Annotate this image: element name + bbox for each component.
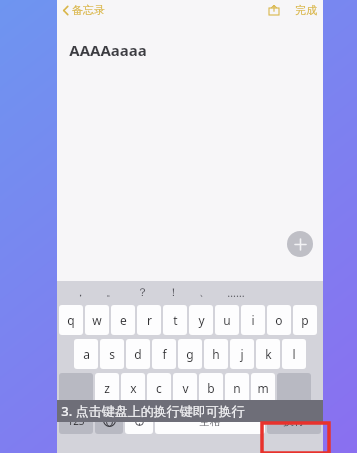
button[interactable]: d bbox=[126, 339, 150, 369]
staticText: ， bbox=[75, 285, 86, 299]
button[interactable]: r bbox=[137, 305, 161, 335]
button[interactable]: 语音输入 bbox=[125, 407, 153, 434]
staticText: 。 bbox=[106, 285, 117, 299]
button[interactable]: w bbox=[85, 305, 109, 335]
staticText: 、 bbox=[199, 285, 210, 299]
button[interactable]: f bbox=[152, 339, 176, 369]
staticText: y bbox=[198, 312, 205, 328]
staticText: a bbox=[83, 346, 90, 362]
button[interactable]: ， bbox=[65, 281, 96, 303]
staticText: ！ bbox=[168, 285, 179, 299]
staticText: x bbox=[130, 380, 137, 396]
staticText: d bbox=[134, 346, 142, 362]
staticText: q bbox=[67, 312, 75, 328]
staticText: s bbox=[109, 346, 115, 362]
button[interactable]: x bbox=[121, 373, 145, 403]
staticText: i bbox=[251, 312, 255, 328]
button[interactable] bbox=[277, 373, 311, 403]
staticText: r bbox=[147, 312, 152, 328]
staticText: z bbox=[104, 380, 110, 396]
staticText: b bbox=[207, 380, 215, 396]
staticText: t bbox=[173, 312, 178, 328]
staticText: k bbox=[265, 346, 272, 362]
button[interactable]: k bbox=[256, 339, 280, 369]
button[interactable]: c bbox=[147, 373, 171, 403]
button[interactable]: n bbox=[225, 373, 249, 403]
staticText: h bbox=[212, 346, 220, 362]
button[interactable]: 换行 bbox=[267, 407, 321, 434]
button[interactable]: …… bbox=[220, 281, 251, 303]
staticText: p bbox=[301, 312, 309, 328]
button[interactable]: 空格 bbox=[155, 407, 265, 434]
button[interactable]: 完成 bbox=[295, 3, 317, 17]
staticText: 完成 bbox=[295, 3, 317, 17]
staticText: w bbox=[92, 312, 102, 328]
staticText: f bbox=[162, 346, 167, 362]
staticText: o bbox=[275, 312, 283, 328]
button[interactable]: 切换语言 bbox=[95, 407, 123, 434]
staticText: …… bbox=[227, 285, 245, 300]
button[interactable]: v bbox=[173, 373, 197, 403]
staticText: u bbox=[223, 312, 231, 328]
staticText: j bbox=[240, 346, 244, 362]
button[interactable]: t bbox=[163, 305, 187, 335]
button[interactable]: p bbox=[293, 305, 317, 335]
button[interactable]: h bbox=[204, 339, 228, 369]
button[interactable]: g bbox=[178, 339, 202, 369]
button[interactable] bbox=[59, 373, 93, 403]
staticText: 空格 bbox=[199, 414, 221, 428]
button[interactable]: e bbox=[111, 305, 135, 335]
staticText: m bbox=[257, 380, 269, 396]
staticText: l bbox=[292, 346, 296, 362]
button[interactable]: u bbox=[215, 305, 239, 335]
staticText: v bbox=[182, 380, 189, 396]
button[interactable]: 分享 bbox=[267, 3, 281, 17]
button[interactable]: 添加 bbox=[287, 231, 313, 257]
staticText: 备忘录 bbox=[72, 3, 105, 17]
button[interactable]: s bbox=[100, 339, 124, 369]
button[interactable]: 。 bbox=[96, 281, 127, 303]
button[interactable]: z bbox=[95, 373, 119, 403]
button[interactable]: 、 bbox=[189, 281, 220, 303]
button[interactable]: 123 bbox=[59, 407, 93, 434]
button[interactable]: q bbox=[59, 305, 83, 335]
staticText: ？ bbox=[137, 285, 148, 299]
button[interactable]: m bbox=[251, 373, 275, 403]
staticText: g bbox=[186, 346, 194, 362]
button[interactable]: ？ bbox=[127, 281, 158, 303]
staticText: 123 bbox=[67, 414, 85, 428]
button[interactable]: i bbox=[241, 305, 265, 335]
staticText: n bbox=[233, 380, 241, 396]
staticText: AAAAaaaa bbox=[69, 40, 147, 60]
button[interactable]: b bbox=[199, 373, 223, 403]
button[interactable]: y bbox=[189, 305, 213, 335]
button[interactable]: ！ bbox=[158, 281, 189, 303]
staticText: 换行 bbox=[283, 414, 305, 428]
button[interactable]: 备忘录 bbox=[62, 3, 105, 17]
staticText: c bbox=[156, 380, 162, 396]
button[interactable]: o bbox=[267, 305, 291, 335]
button[interactable]: l bbox=[282, 339, 306, 369]
staticText: e bbox=[120, 312, 127, 328]
button[interactable]: a bbox=[74, 339, 98, 369]
staticText: 3. 点击键盘上的换行键即可换行 bbox=[61, 402, 245, 420]
button[interactable]: j bbox=[230, 339, 254, 369]
